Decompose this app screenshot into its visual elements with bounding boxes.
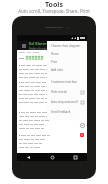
staticText: Share — [51, 52, 59, 56]
staticText: Perfect chords — [29, 47, 47, 50]
staticText: Choose chart diagram — [51, 44, 81, 48]
staticText: Print — [51, 60, 58, 64]
button[interactable]: Back — [27, 156, 30, 159]
staticText: Add note — [51, 68, 63, 72]
staticText: Auto stop autoscroll — [51, 100, 78, 104]
button[interactable]: Share — [47, 50, 87, 58]
staticText: Send feedback — [51, 110, 71, 114]
button[interactable]: Hide chords — [47, 87, 87, 97]
button[interactable]: Auto stop autoscroll — [47, 97, 87, 107]
staticText: Ed Sheeran — [29, 41, 53, 47]
staticText: Tools — [0, 0, 108, 10]
button[interactable]: Recents — [74, 156, 77, 159]
button[interactable]: Customize interface — [47, 77, 87, 87]
staticText: Hide chords — [51, 90, 67, 94]
staticText: Auto scroll, Transpose, Share, Print — [0, 8, 108, 14]
button[interactable]: Home — [51, 156, 54, 159]
button[interactable]: Watch video — [80, 133, 84, 137]
button[interactable]: Choose chart diagram — [47, 42, 87, 50]
button[interactable]: Add note — [47, 66, 87, 74]
button[interactable]: Print — [47, 58, 87, 66]
button[interactable]: Auto scroll — [80, 123, 85, 128]
button[interactable]: Send feedback — [47, 107, 87, 117]
staticText: Customize interface — [51, 80, 78, 84]
